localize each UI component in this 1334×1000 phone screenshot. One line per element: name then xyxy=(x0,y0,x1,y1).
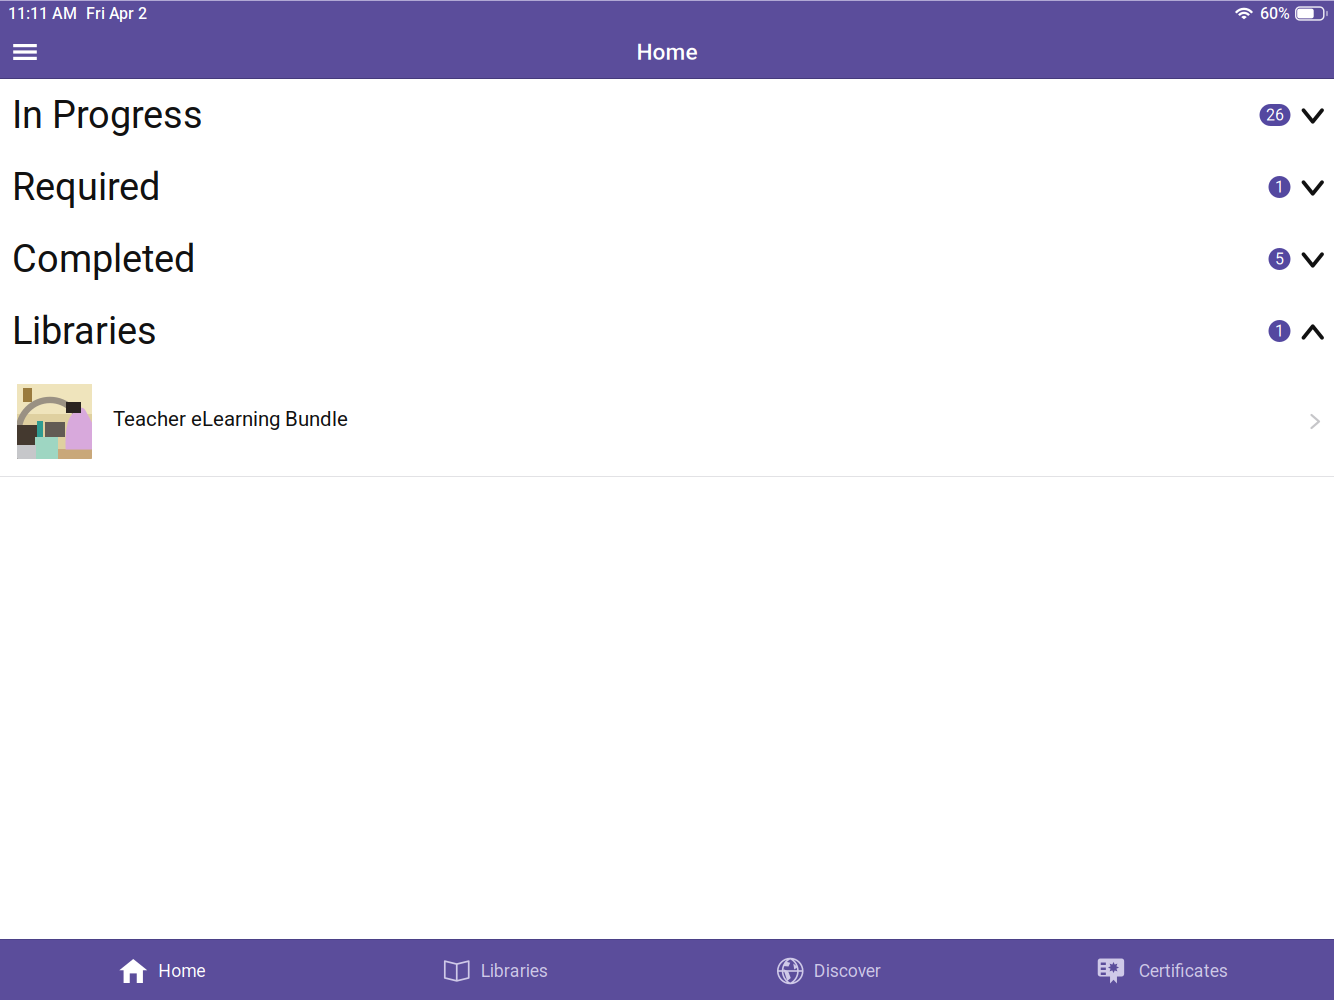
staticText: 11:11 AM xyxy=(8,4,77,23)
button[interactable]: Menu xyxy=(1,29,49,75)
staticText: Home xyxy=(636,39,697,65)
button[interactable]: Certificates xyxy=(1000,942,1334,1000)
button[interactable]: Completed xyxy=(0,223,1334,295)
staticText: Required xyxy=(12,165,160,209)
staticText: Libraries xyxy=(12,309,157,353)
staticText: Home xyxy=(158,961,205,981)
staticText: Teacher eLearning Bundle xyxy=(113,407,348,431)
button[interactable]: Teacher eLearning Bundle xyxy=(0,367,1334,476)
staticText: Completed xyxy=(12,237,195,281)
staticText: 1 xyxy=(1275,178,1284,196)
button[interactable]: Home xyxy=(0,942,333,1000)
staticText: Fri Apr 2 xyxy=(86,4,147,23)
button[interactable]: Required xyxy=(0,151,1334,223)
button[interactable]: In Progress xyxy=(0,79,1334,151)
staticText: 5 xyxy=(1275,250,1284,268)
button[interactable]: Libraries xyxy=(333,942,667,1000)
staticText: 60% xyxy=(1260,4,1290,23)
button[interactable]: Discover xyxy=(667,942,1000,1000)
staticText: 1 xyxy=(1275,322,1284,340)
staticText: In Progress xyxy=(12,93,203,137)
staticText: Certificates xyxy=(1139,961,1228,981)
button[interactable]: Libraries xyxy=(0,295,1334,367)
staticText: Discover xyxy=(814,961,881,981)
staticText: 26 xyxy=(1266,106,1284,124)
staticText: Libraries xyxy=(481,961,548,981)
